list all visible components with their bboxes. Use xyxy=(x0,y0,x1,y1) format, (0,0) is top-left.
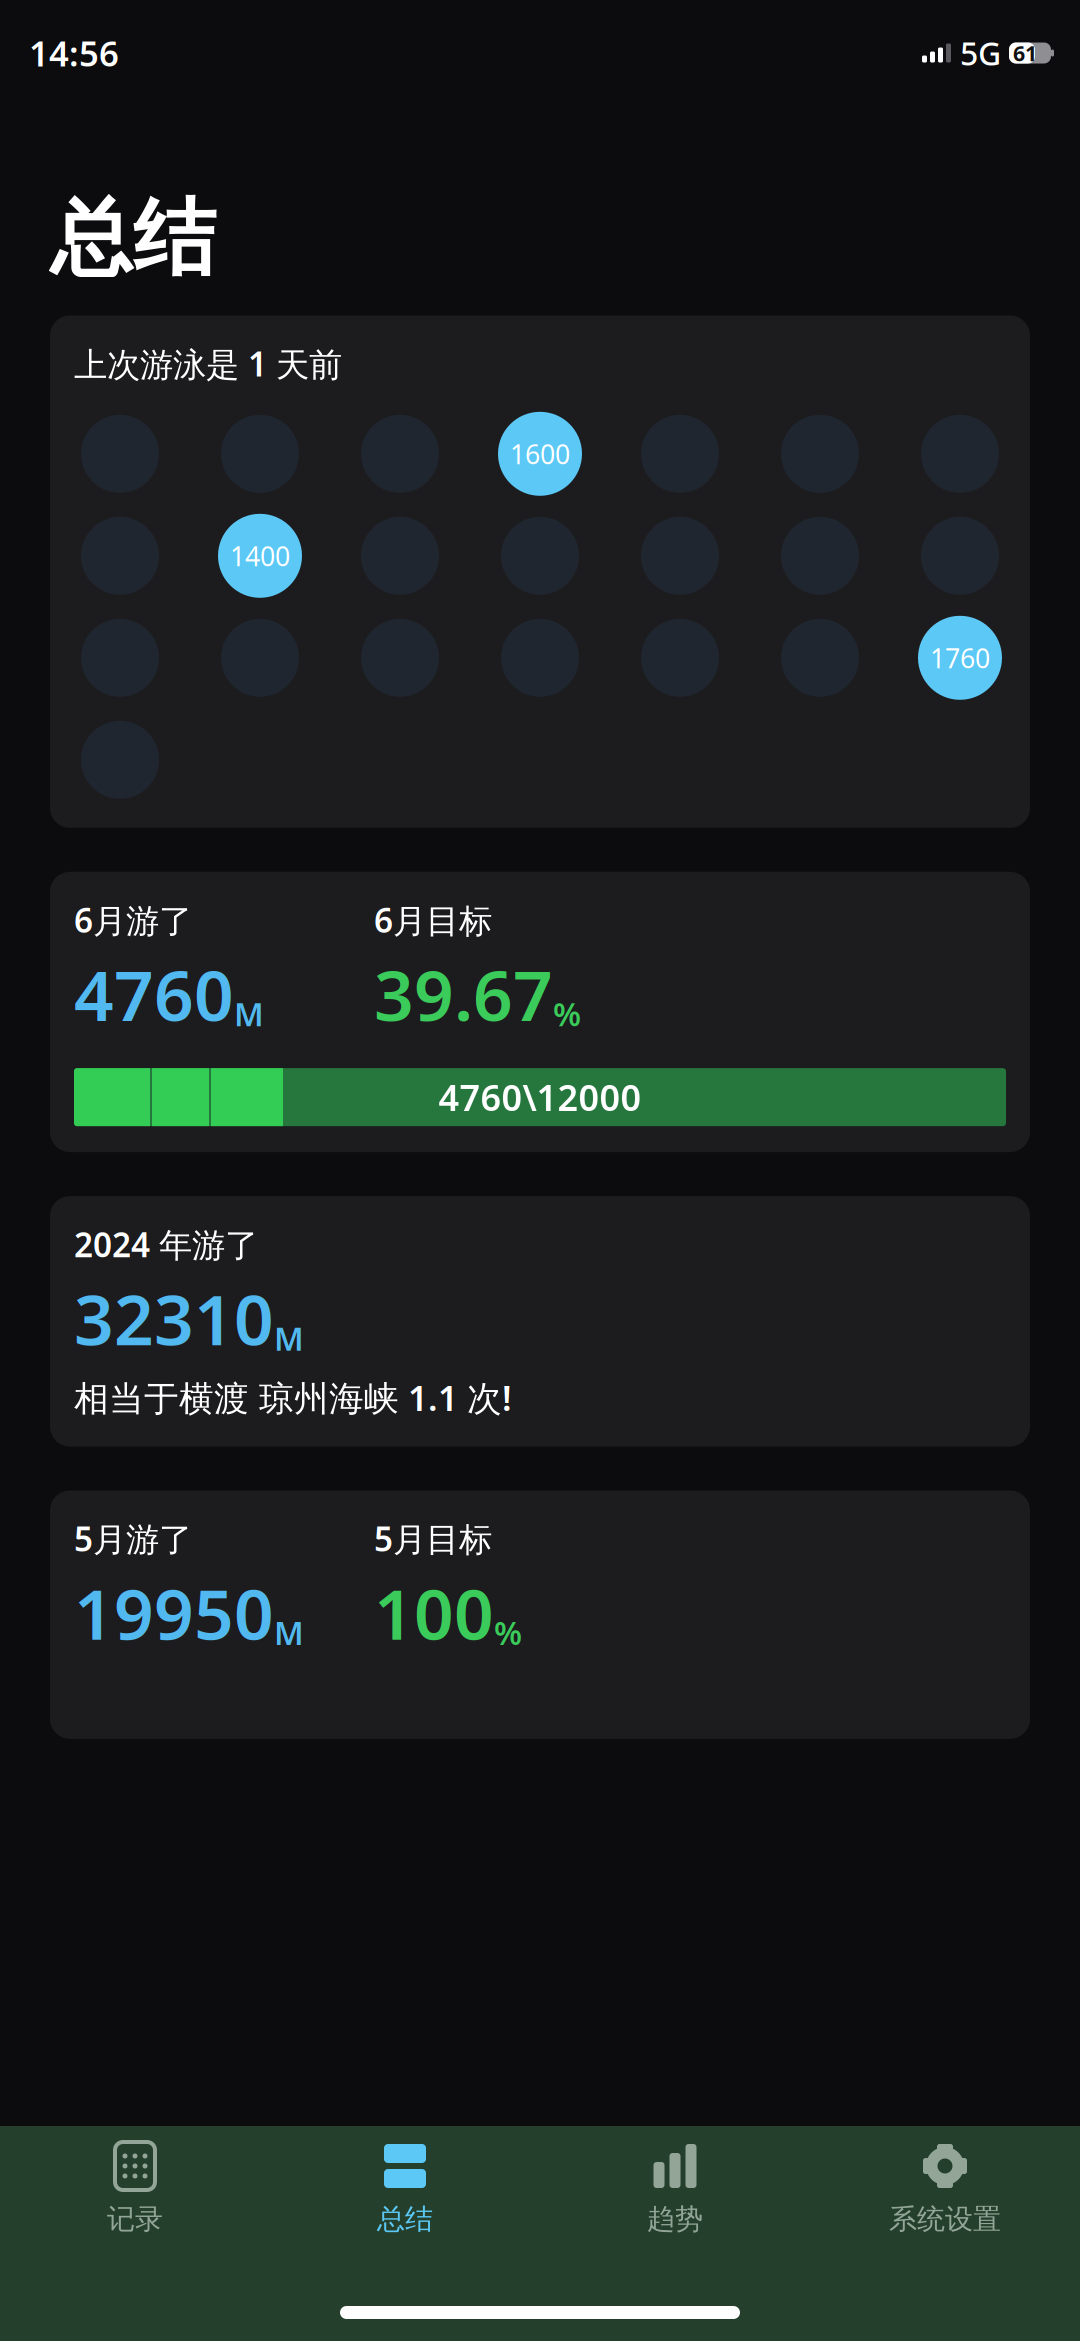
staticText: % xyxy=(494,1611,522,1654)
staticText: M xyxy=(274,1317,304,1359)
staticText: 2024 年游了 xyxy=(74,1222,258,1266)
staticText: 39.67 xyxy=(374,948,553,1040)
button[interactable]: 总结 xyxy=(270,2126,540,2248)
staticText: 4760\12000 xyxy=(438,1073,641,1121)
staticText: 6月目标 xyxy=(374,898,492,942)
staticText: 5G xyxy=(960,32,1001,74)
staticText: 19950 xyxy=(74,1567,274,1659)
staticText: 100 xyxy=(374,1567,494,1659)
staticText: % xyxy=(553,993,581,1035)
staticText: 14:56 xyxy=(29,30,119,76)
staticText: 6月游了 xyxy=(74,898,192,942)
button[interactable]: 记录 xyxy=(0,2126,270,2248)
staticText: 5月游了 xyxy=(74,1516,192,1561)
staticText: 系统设置 xyxy=(889,2202,1001,2236)
staticText: 上次游泳是 1 天前 xyxy=(74,341,342,386)
staticText: M xyxy=(234,993,264,1035)
staticText: 1760 xyxy=(930,640,990,675)
staticText: 相当于横渡 琼州海峡 1.1 次! xyxy=(74,1374,512,1420)
staticText: 61 xyxy=(1013,39,1037,67)
staticText: 1400 xyxy=(230,538,290,573)
button[interactable]: 系统设置 xyxy=(810,2126,1080,2248)
staticText: 4760 xyxy=(74,948,234,1040)
staticText: 总结 xyxy=(50,188,216,289)
button[interactable]: 趋势 xyxy=(540,2126,810,2248)
staticText: 趋势 xyxy=(647,2202,703,2236)
staticText: 记录 xyxy=(107,2202,163,2236)
staticText: 总结 xyxy=(377,2202,433,2236)
staticText: 1600 xyxy=(510,436,570,471)
staticText: M xyxy=(274,1611,304,1654)
staticText: 32310 xyxy=(74,1272,274,1364)
staticText: 5月目标 xyxy=(374,1516,492,1561)
